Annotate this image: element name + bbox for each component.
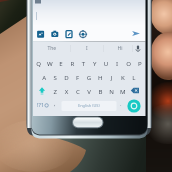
button[interactable]: [0, 0, 172, 172]
